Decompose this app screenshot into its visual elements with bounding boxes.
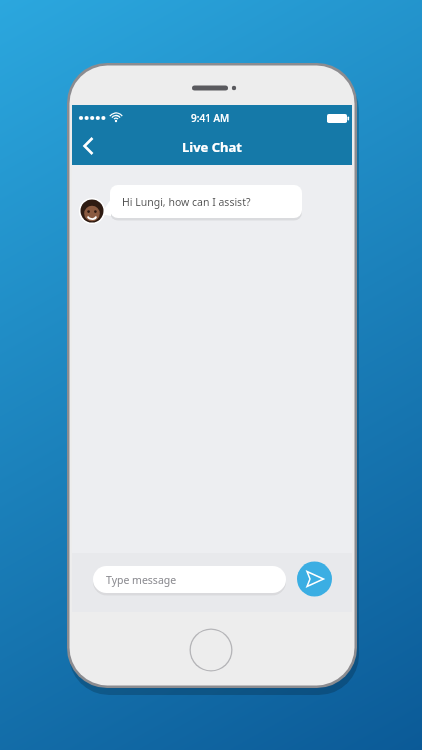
staticText: Type message <box>106 573 177 587</box>
staticText: Live Chat <box>72 138 352 156</box>
button[interactable]: Send message <box>297 561 332 596</box>
button[interactable]: Home <box>190 629 232 671</box>
staticText: 9:41 AM <box>191 111 230 125</box>
button[interactable]: Type message <box>93 566 286 593</box>
button[interactable]: Back <box>76 132 104 160</box>
button[interactable]: Hi Lungi, how can I assist? <box>122 195 251 209</box>
